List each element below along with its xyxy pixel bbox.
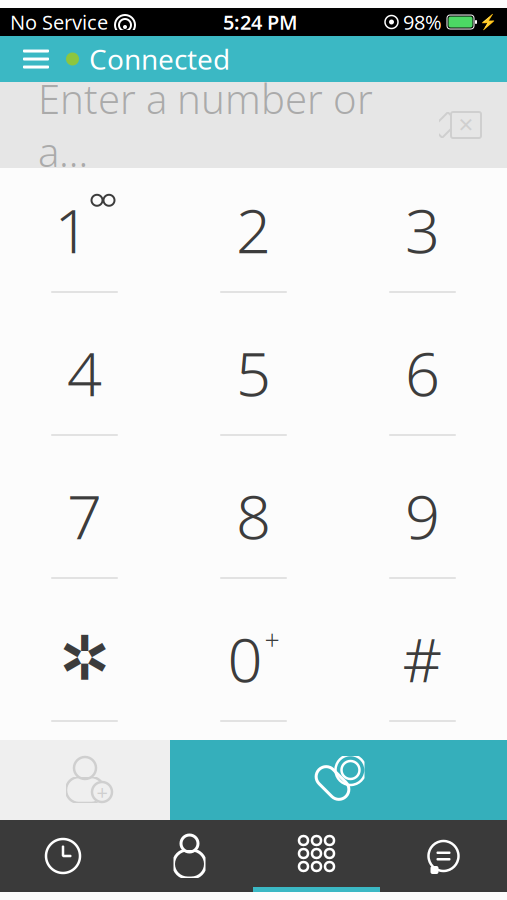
- button[interactable]: 9: [338, 454, 507, 597]
- staticText: ✲: [59, 624, 110, 693]
- button[interactable]: Add contact: [0, 740, 170, 820]
- staticText: +: [96, 779, 107, 805]
- staticText: 6: [405, 332, 440, 413]
- staticText: ✕: [457, 114, 474, 136]
- button[interactable]: Keypad: [253, 820, 380, 892]
- button[interactable]: 8: [169, 454, 338, 597]
- button[interactable]: 3: [338, 168, 507, 311]
- button[interactable]: Backspace: [431, 105, 489, 145]
- button[interactable]: Connected: [62, 36, 234, 82]
- staticText: Enter a number or a…: [38, 72, 373, 178]
- staticText: 9: [405, 475, 440, 556]
- staticText: 2: [236, 189, 271, 270]
- staticText: 98%: [403, 9, 442, 35]
- button[interactable]: 6: [338, 311, 507, 454]
- staticText: 5:24 PM: [223, 9, 298, 35]
- button[interactable]: Call: [170, 740, 507, 820]
- button[interactable]: ✲: [0, 597, 169, 740]
- staticText: +: [264, 622, 279, 657]
- button[interactable]: 1: [0, 168, 169, 311]
- staticText: 3: [405, 189, 440, 270]
- button[interactable]: 4: [0, 311, 169, 454]
- staticText: 1: [54, 189, 89, 270]
- button[interactable]: 7: [0, 454, 169, 597]
- staticText: No Service: [10, 9, 108, 35]
- button[interactable]: Messages: [380, 820, 507, 892]
- staticText: ⚡: [479, 14, 497, 30]
- button[interactable]: Recents: [0, 820, 126, 892]
- staticText: 0: [227, 618, 262, 699]
- button[interactable]: Contacts: [126, 820, 253, 892]
- button[interactable]: #: [338, 597, 507, 740]
- staticText: 8: [236, 475, 271, 556]
- staticText: #: [402, 618, 442, 699]
- button[interactable]: 0: [169, 597, 338, 740]
- staticText: Connected: [89, 40, 230, 78]
- button[interactable]: 5: [169, 311, 338, 454]
- staticText: 4: [67, 332, 102, 413]
- staticText: 7: [67, 475, 102, 556]
- staticText: 5: [236, 332, 271, 413]
- button[interactable]: 2: [169, 168, 338, 311]
- button[interactable]: Menu: [10, 36, 62, 82]
